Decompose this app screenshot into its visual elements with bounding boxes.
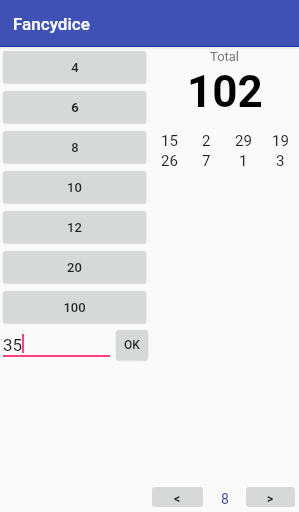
staticText: 8 <box>71 140 79 155</box>
staticText: 35 <box>3 335 23 355</box>
staticText: 26 <box>161 152 178 170</box>
staticText: OK <box>124 338 140 352</box>
staticText: 7 <box>202 152 211 170</box>
button[interactable]: 4 <box>3 51 146 83</box>
button[interactable]: 6 <box>3 91 146 123</box>
button[interactable]: 12 <box>3 211 146 243</box>
staticText: 100 <box>63 300 86 315</box>
staticText: 3 <box>276 152 285 170</box>
button[interactable]: OK <box>116 330 148 360</box>
staticText: Total <box>210 49 240 64</box>
button[interactable]: 10 <box>3 171 146 203</box>
staticText: 10 <box>67 180 82 195</box>
staticText: 4 <box>71 60 79 75</box>
staticText: 12 <box>67 220 82 235</box>
button[interactable]: Custom dice sides input <box>3 330 110 360</box>
staticText: 15 <box>161 132 178 150</box>
staticText: 8 <box>221 491 229 507</box>
button[interactable]: 100 <box>3 291 146 323</box>
staticText: 6 <box>71 100 79 115</box>
staticText: 1 <box>239 152 248 170</box>
staticText: 20 <box>67 260 82 275</box>
staticText: < <box>174 492 181 506</box>
staticText: 19 <box>272 132 289 150</box>
staticText: > <box>267 492 274 506</box>
button[interactable]: Next page <box>246 487 295 507</box>
staticText: Fancydice <box>13 14 90 34</box>
staticText: 29 <box>235 132 252 150</box>
staticText: 102 <box>187 66 263 118</box>
button[interactable]: Previous page <box>152 487 203 507</box>
staticText: 2 <box>202 132 211 150</box>
button[interactable]: 8 <box>3 131 146 163</box>
button[interactable]: 20 <box>3 251 146 283</box>
